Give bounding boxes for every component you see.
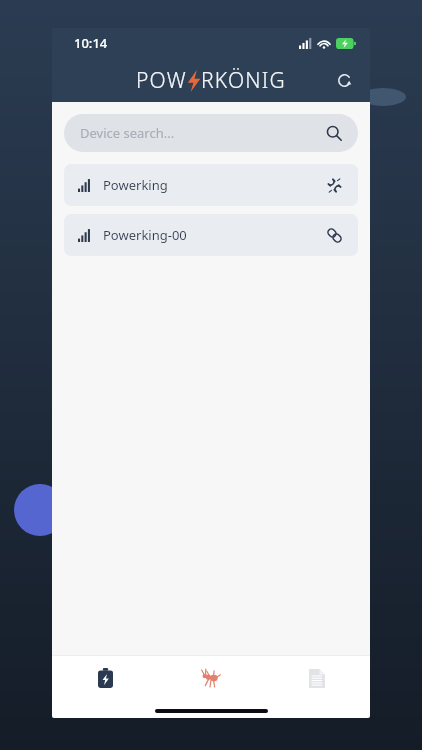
- other: Connected: [324, 225, 344, 245]
- other: Disconnected: [324, 175, 344, 195]
- staticText: Powerking-00: [103, 226, 324, 244]
- button[interactable]: Logs: [264, 656, 370, 700]
- button[interactable]: Battery: [52, 656, 158, 700]
- button[interactable]: Powerking-00: [64, 214, 358, 256]
- staticText: 10:14: [74, 34, 108, 52]
- button[interactable]: Refresh: [330, 66, 358, 94]
- button[interactable]: Devices: [158, 656, 264, 700]
- button[interactable]: Device search...: [64, 114, 358, 152]
- staticText: Powerking: [103, 176, 324, 194]
- staticText: Device search...: [80, 124, 326, 142]
- staticText: POW: [136, 66, 187, 95]
- button[interactable]: Powerking: [64, 164, 358, 206]
- staticText: RKÖNIG: [201, 66, 286, 95]
